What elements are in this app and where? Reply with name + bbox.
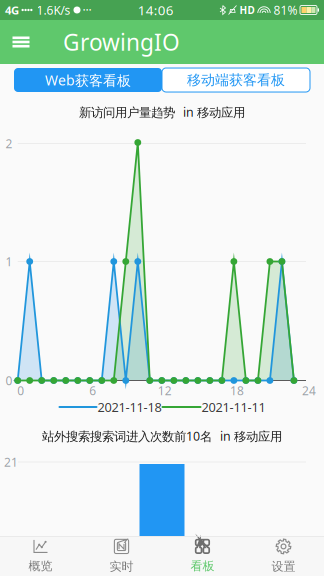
button[interactable]: 实时 <box>81 536 162 576</box>
staticText: 12 <box>158 382 172 399</box>
staticText: 设置 <box>271 559 295 574</box>
staticText: 1.6K/s <box>36 2 70 18</box>
staticText: 移动端获客看板 <box>187 71 285 89</box>
staticText: 81% <box>273 2 297 18</box>
button[interactable]: 概览 <box>0 536 81 576</box>
button[interactable]: Menu <box>0 20 42 64</box>
button[interactable]: 移动端获客看板 <box>162 68 310 92</box>
staticText: 14:06 <box>138 1 174 19</box>
staticText: HD <box>239 3 254 17</box>
button[interactable]: 设置 <box>243 536 324 576</box>
staticText: 实时 <box>109 559 133 574</box>
staticText: 站外搜索搜索词进入次数前10名 in 移动应用 <box>42 428 282 444</box>
staticText: 看板 <box>190 558 214 573</box>
staticText: 1 <box>5 253 12 270</box>
staticText: GrowingIO <box>63 27 180 57</box>
staticText: Web获客看板 <box>45 70 131 89</box>
button[interactable]: 看板 <box>162 536 243 576</box>
staticText: 24 <box>302 382 316 399</box>
staticText: 2 <box>5 135 12 152</box>
staticText: 概览 <box>28 558 52 573</box>
staticText: 18 <box>230 382 244 399</box>
button[interactable]: Web获客看板 <box>14 68 162 92</box>
staticText: 4G <box>5 2 19 18</box>
staticText: 2021-11-18 <box>97 398 161 416</box>
staticText: 0 <box>5 372 12 389</box>
staticText: 6 <box>89 382 96 399</box>
staticText: 21 <box>4 454 18 470</box>
staticText: 新访问用户量趋势 in 移动应用 <box>79 104 245 120</box>
staticText: ··· <box>82 2 91 18</box>
staticText: 0 <box>17 382 24 399</box>
staticText: 2021-11-11 <box>201 398 265 416</box>
